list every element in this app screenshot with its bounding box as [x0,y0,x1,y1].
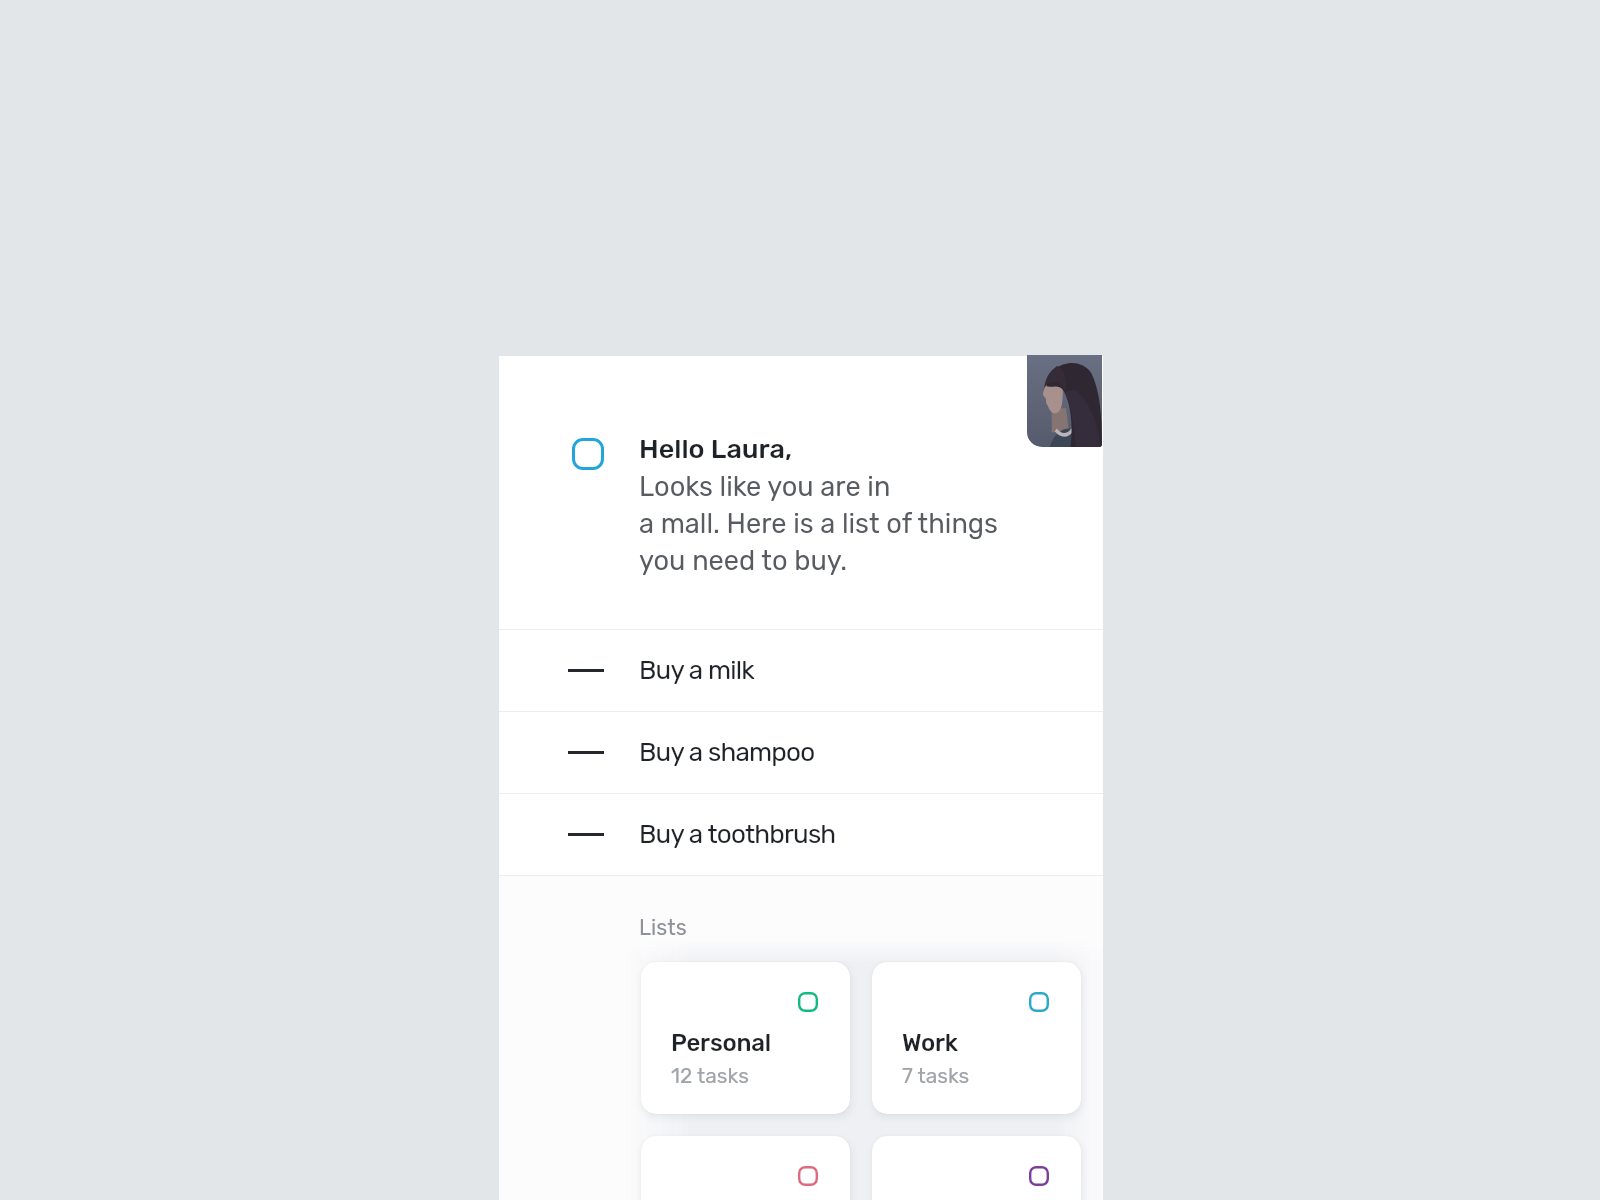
button[interactable]: Profile photo [1027,355,1102,447]
button[interactable]: Personal [641,962,850,1114]
button[interactable]: Work [872,962,1081,1114]
staticText: Buy a shampoo [639,737,815,768]
button[interactable]: Study [872,1136,1081,1200]
staticText: Looks like you are in a mall. Here is a … [639,471,998,577]
staticText: Hello Laura, [639,433,793,465]
staticText: Buy a milk [639,655,754,686]
staticText: 12 tasks [671,1063,749,1088]
button[interactable]: Buy a milk [499,630,1103,711]
staticText: Buy a toothbrush [639,819,836,850]
staticText: Lists [639,915,687,940]
button[interactable]: Buy a shampoo [499,712,1103,793]
button[interactable]: Home [641,1136,850,1200]
button[interactable]: Toggle greeting task [572,438,604,470]
staticText: Personal [671,1029,771,1057]
staticText: 7 tasks [902,1063,970,1088]
button[interactable]: Buy a toothbrush [499,794,1103,875]
staticText: Work [902,1029,958,1057]
